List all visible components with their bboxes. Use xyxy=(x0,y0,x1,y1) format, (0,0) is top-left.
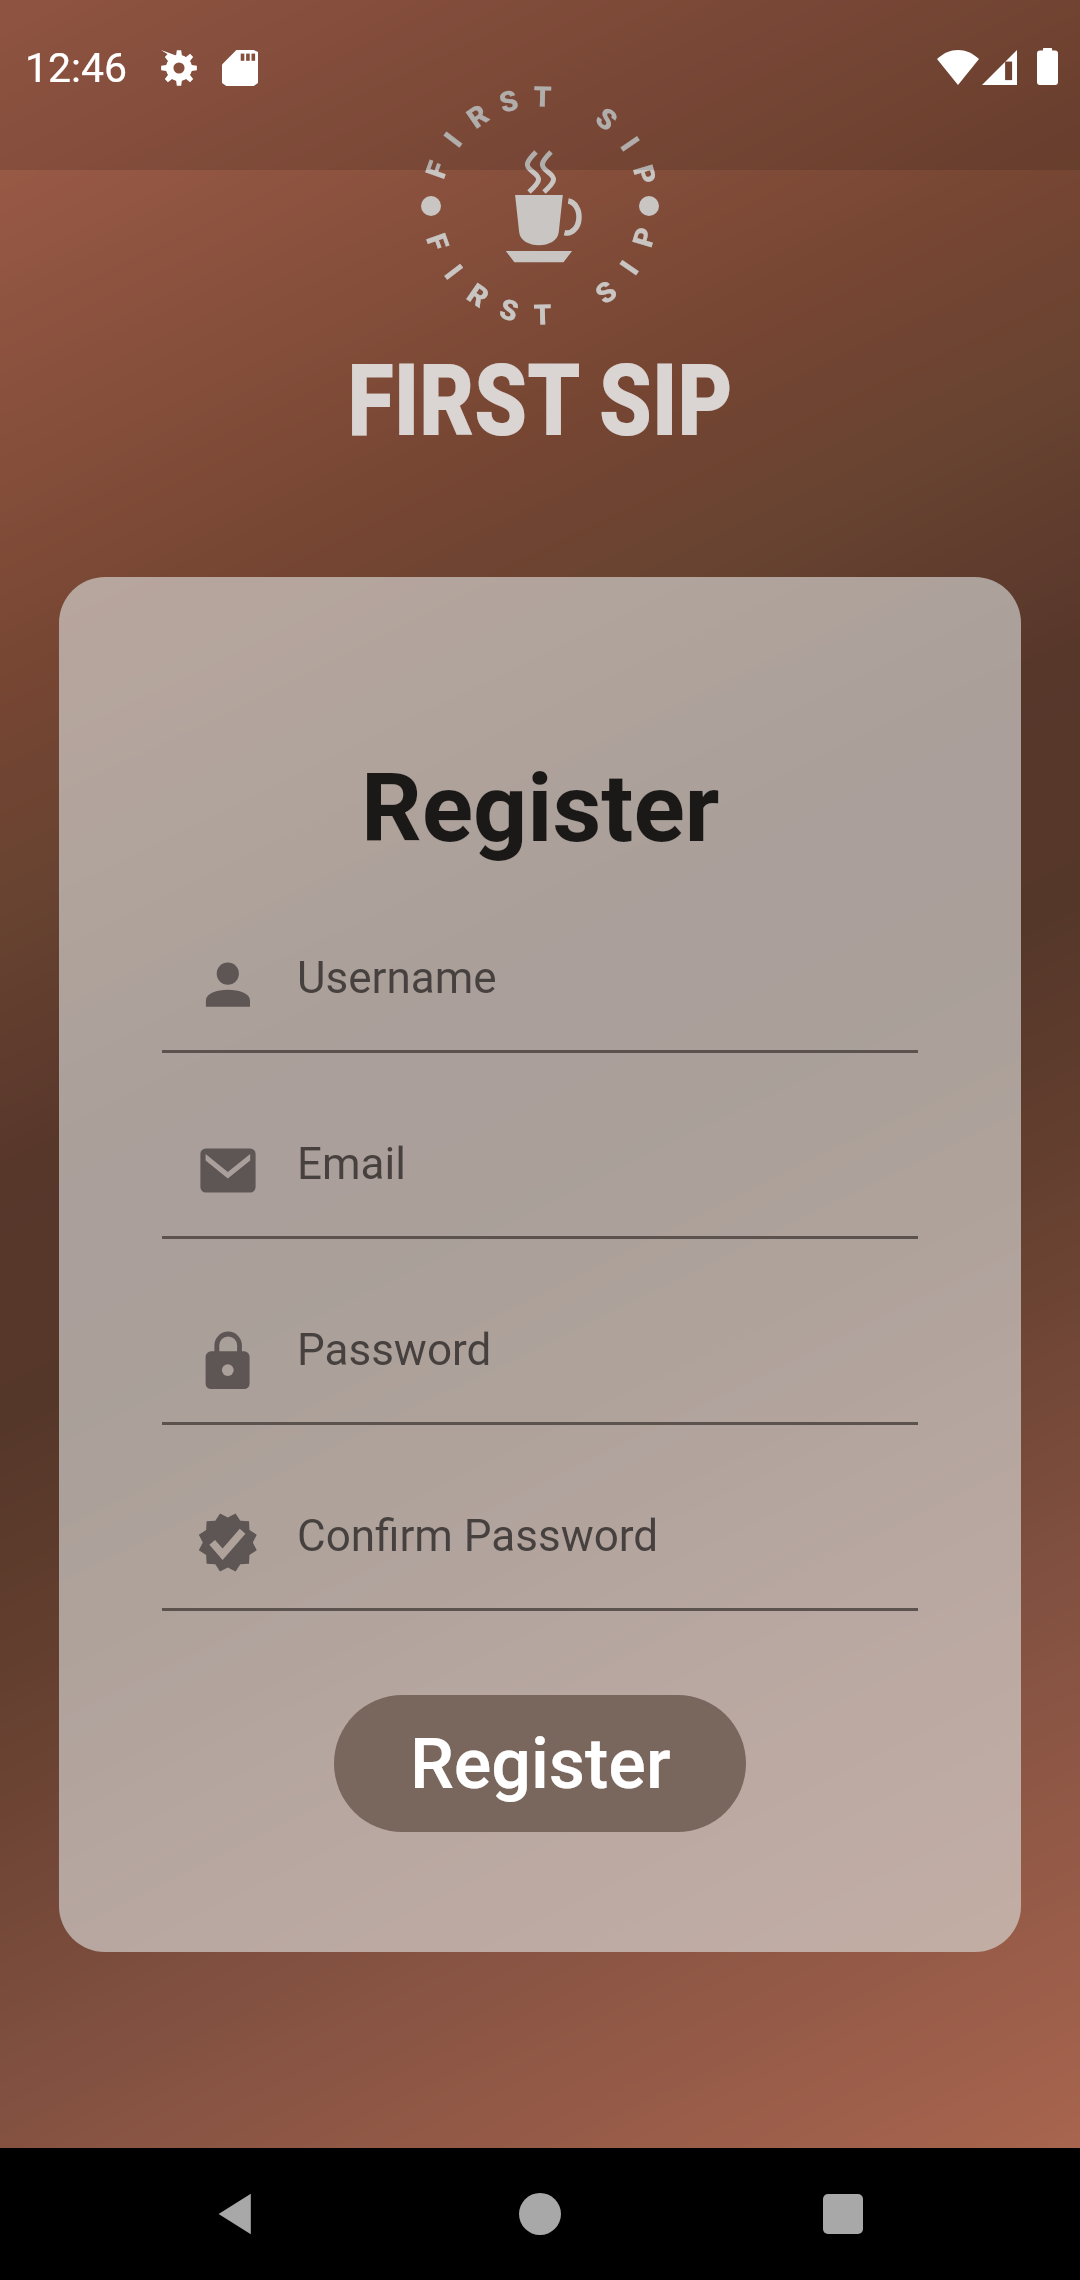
staticText: Register xyxy=(361,753,720,864)
button[interactable]: Back xyxy=(171,2148,303,2280)
button[interactable]: Register xyxy=(334,1695,746,1832)
staticText: Email xyxy=(297,1138,406,1190)
staticText: Confirm Password xyxy=(297,1510,659,1562)
staticText: Register xyxy=(410,1723,671,1805)
staticText: Username xyxy=(297,952,497,1004)
staticText: 12:46 xyxy=(25,44,128,92)
button[interactable]: Confirm Password xyxy=(162,1496,918,1682)
button[interactable]: Username xyxy=(162,938,918,1124)
staticText: FIRST SIP xyxy=(347,342,733,459)
staticText: Password xyxy=(297,1324,492,1376)
button[interactable]: Home xyxy=(474,2148,606,2280)
button[interactable]: Recent apps xyxy=(777,2148,909,2280)
button[interactable]: Password xyxy=(162,1310,918,1496)
button[interactable]: Email xyxy=(162,1124,918,1310)
